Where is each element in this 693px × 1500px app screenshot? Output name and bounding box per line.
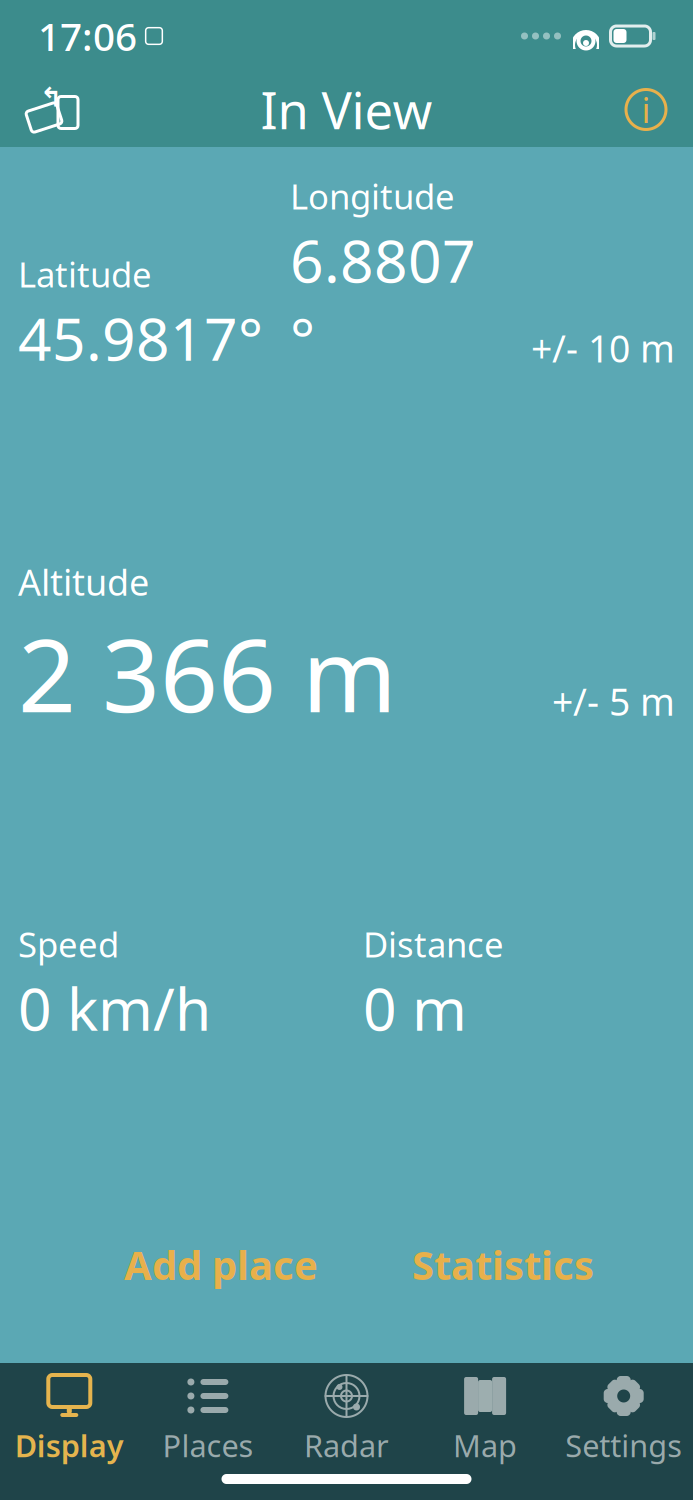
staticText: 45.9817°: [18, 299, 263, 377]
staticText: ↰: [40, 82, 62, 113]
staticText: Longitude: [290, 173, 455, 219]
staticText: 0 m: [363, 969, 467, 1047]
button[interactable]: Add place: [106, 1228, 336, 1301]
staticText: i: [641, 86, 650, 132]
staticText: Add place: [124, 1238, 318, 1291]
button[interactable]: Places: [139, 1363, 277, 1472]
staticText: Settings: [565, 1425, 682, 1466]
staticText: 17:06: [38, 10, 137, 62]
staticText: Latitude: [18, 251, 152, 297]
button[interactable]: Statistics: [394, 1228, 612, 1301]
button[interactable]: Map: [416, 1363, 554, 1472]
staticText: Altitude: [18, 558, 149, 606]
staticText: Statistics: [412, 1238, 594, 1291]
staticText: Speed: [18, 921, 119, 967]
staticText: Map: [453, 1425, 517, 1466]
staticText: 6.8807°: [290, 221, 476, 377]
staticText: Radar: [304, 1425, 389, 1466]
staticText: In View: [260, 76, 432, 143]
staticText: +/- 5 m: [552, 677, 675, 726]
button[interactable]: Rotate screen: [18, 80, 88, 138]
staticText: Places: [162, 1425, 253, 1466]
button[interactable]: Display: [0, 1363, 139, 1472]
staticText: +/- 10 m: [531, 323, 675, 373]
button[interactable]: Radar: [277, 1363, 416, 1472]
button[interactable]: Info: [617, 82, 675, 136]
staticText: Display: [15, 1425, 124, 1466]
staticText: 0 km/h: [18, 969, 211, 1047]
staticText: Distance: [363, 921, 504, 967]
staticText: 2 366 m: [18, 606, 397, 740]
button[interactable]: Settings: [554, 1363, 693, 1472]
